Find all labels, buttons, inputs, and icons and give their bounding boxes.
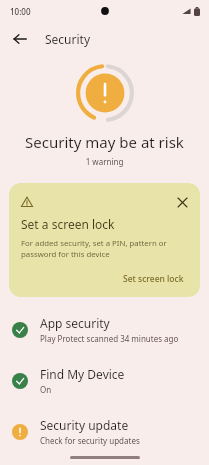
button[interactable]: Back xyxy=(8,27,32,51)
staticText: 1 warning xyxy=(0,156,209,167)
staticText: On xyxy=(40,384,52,395)
staticText: Set a screen lock xyxy=(21,216,115,232)
button[interactable]: Dismiss xyxy=(9,183,200,297)
staticText: Find My Device xyxy=(40,366,125,382)
staticText: 10:00 xyxy=(10,6,31,17)
button[interactable]: App security xyxy=(0,313,209,346)
button[interactable]: Dismiss xyxy=(174,194,190,210)
staticText: Check for security updates xyxy=(40,435,140,446)
staticText: For added security, set a PIN, pattern o… xyxy=(21,238,190,260)
staticText: Play Protect scanned 34 minutes ago xyxy=(40,333,179,344)
staticText: App security xyxy=(40,315,110,331)
staticText: Security xyxy=(45,31,91,47)
button[interactable]: Set screen lock xyxy=(117,270,190,288)
staticText: Security may be at risk xyxy=(0,132,209,152)
staticText: Set screen lock xyxy=(123,273,184,285)
staticText: Security update xyxy=(40,417,129,433)
button[interactable]: Find My Device xyxy=(0,364,209,397)
button[interactable]: Security update xyxy=(0,415,209,448)
